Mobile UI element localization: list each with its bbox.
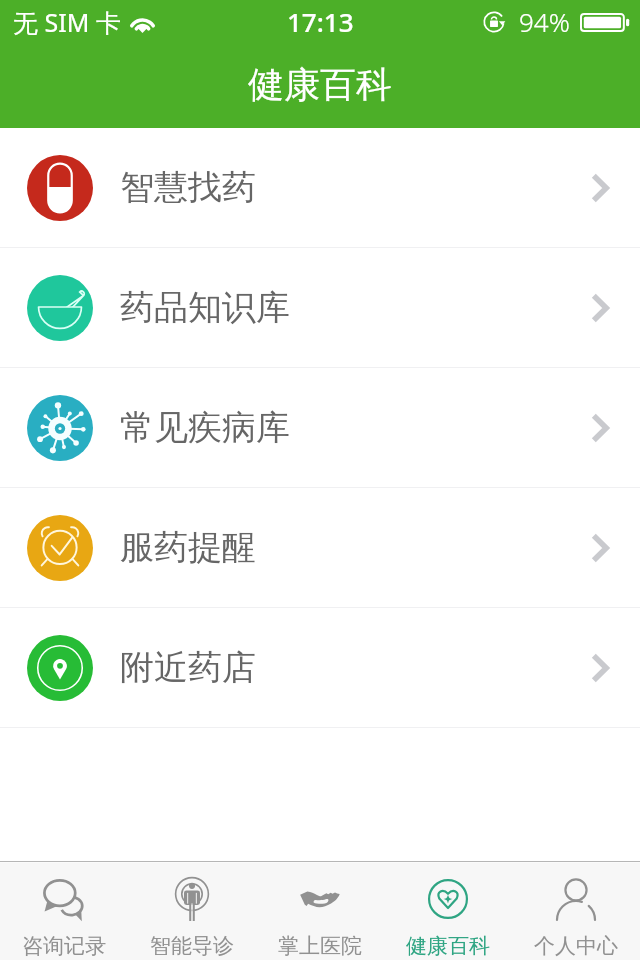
staticText: 药品知识库 bbox=[120, 286, 290, 329]
button[interactable]: 咨询记录 bbox=[0, 863, 128, 960]
button[interactable]: 智能导诊 bbox=[128, 863, 256, 960]
staticText: 健康百科 bbox=[406, 933, 490, 959]
staticText: 常见疾病库 bbox=[120, 406, 290, 449]
staticText: 健康百科 bbox=[248, 62, 392, 107]
button[interactable]: 附近药店 bbox=[0, 608, 640, 727]
button[interactable]: 药品知识库 bbox=[0, 248, 640, 367]
staticText: 无 SIM 卡 bbox=[13, 5, 121, 39]
button[interactable]: 掌上医院 bbox=[256, 863, 384, 960]
button[interactable]: 个人中心 bbox=[512, 863, 640, 960]
button[interactable]: 智慧找药 bbox=[0, 128, 640, 247]
staticText: 附近药店 bbox=[120, 646, 256, 689]
button[interactable]: 服药提醒 bbox=[0, 488, 640, 607]
staticText: 掌上医院 bbox=[278, 933, 362, 959]
staticText: 智慧找药 bbox=[120, 166, 256, 209]
button[interactable]: 健康百科 bbox=[384, 863, 512, 960]
staticText: 个人中心 bbox=[534, 933, 618, 959]
staticText: 咨询记录 bbox=[22, 933, 106, 959]
button[interactable]: 常见疾病库 bbox=[0, 368, 640, 487]
staticText: 94% bbox=[519, 4, 570, 39]
staticText: 服药提醒 bbox=[120, 526, 256, 569]
staticText: 智能导诊 bbox=[150, 933, 234, 959]
staticText: 17:13 bbox=[287, 4, 354, 39]
